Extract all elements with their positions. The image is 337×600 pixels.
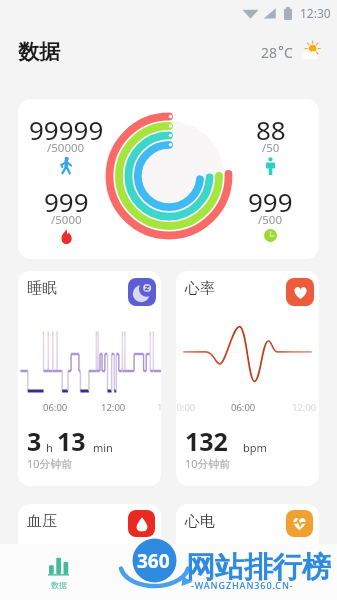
staticText: 10分钟前 [185, 456, 231, 471]
button[interactable]: 心电 [176, 504, 319, 600]
staticText: /50 [262, 140, 280, 156]
staticText: 网站排行榜 [186, 549, 331, 586]
staticText: 血压 [27, 512, 57, 531]
staticText: min [93, 440, 113, 455]
staticText: -WANGZHAN360.CN- [191, 579, 294, 591]
button[interactable]: 99999 [18, 99, 319, 259]
staticText: 心率 [185, 279, 215, 298]
staticText: 12:00 [292, 401, 317, 414]
staticText: 00:00 [176, 401, 196, 414]
button[interactable]: 数据 [34, 557, 82, 590]
staticText: 数据 [18, 39, 60, 65]
staticText: 睡眠 [27, 279, 57, 298]
staticText: bpm [243, 440, 267, 455]
staticText: 28 [261, 43, 278, 62]
staticText: 12:00 [101, 401, 126, 414]
staticText: 13 [57, 424, 86, 458]
staticText: 10分钟前 [27, 456, 73, 471]
staticText: /500 [258, 212, 283, 228]
staticText: 3 [27, 424, 42, 458]
staticText: 99999 [29, 112, 104, 147]
staticText: C [284, 43, 293, 62]
staticText: h [46, 440, 53, 455]
staticText: /5000 [51, 212, 82, 228]
staticText: 18:00 [157, 401, 161, 414]
staticText: 88 [256, 112, 286, 147]
staticText: 心电 [185, 512, 215, 531]
staticText: 999 [248, 184, 293, 219]
staticText: 132 [185, 424, 228, 458]
staticText: 360 [137, 548, 170, 574]
button[interactable]: 心率 [176, 271, 319, 486]
staticText: 数据 [51, 580, 67, 590]
button[interactable]: 血压 [18, 504, 161, 600]
button[interactable]: 睡眠 [18, 271, 161, 486]
staticText: /50000 [47, 140, 85, 156]
staticText: 999 [44, 184, 89, 219]
staticText: 12:30 [300, 5, 331, 21]
staticText: 06:00 [43, 401, 68, 414]
staticText: 06:00 [231, 401, 256, 414]
